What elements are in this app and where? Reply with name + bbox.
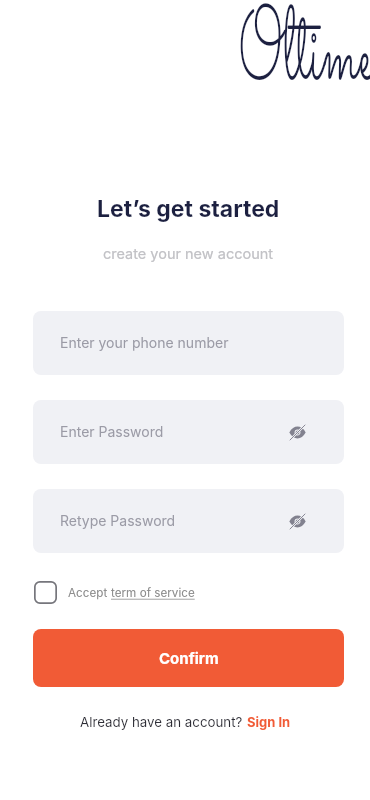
button[interactable]: Confirm [33, 629, 344, 687]
button[interactable]: Sign In [247, 714, 291, 730]
button[interactable]: Accept term of service [33, 580, 58, 605]
staticText: Confirm [159, 649, 219, 667]
button[interactable]: Enter Password [33, 400, 344, 464]
staticText: Enter your phone number [60, 334, 229, 351]
button[interactable]: Enter your phone number [33, 311, 344, 375]
staticText: Already have an account? [80, 714, 247, 730]
button[interactable]: Show password [284, 508, 310, 534]
staticText: Let’s get started [97, 195, 280, 223]
staticText: Retype Password [60, 512, 176, 529]
staticText: term of service [111, 586, 195, 600]
staticText: create your new account [103, 245, 274, 263]
button[interactable]: Accept [68, 586, 195, 600]
staticText: Enter Password [60, 423, 164, 440]
staticText: Accept [68, 586, 111, 600]
button[interactable]: Show password [284, 419, 310, 445]
button[interactable]: Retype Password [33, 489, 344, 553]
